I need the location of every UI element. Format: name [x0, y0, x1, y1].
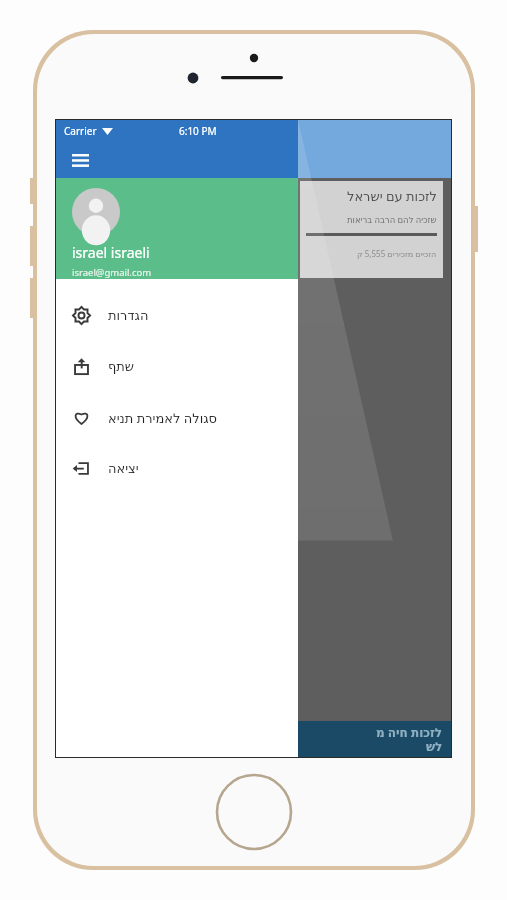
- button[interactable]: יציאה: [56, 443, 298, 494]
- staticText: לזכות עם ישראל: [347, 187, 437, 205]
- staticText: israel israeli: [72, 243, 150, 262]
- staticText: 6:10 PM: [179, 124, 217, 138]
- button[interactable]: הגדרות: [56, 290, 298, 341]
- button[interactable]: Open navigation menu: [65, 145, 95, 175]
- staticText: סגולה לאמירת תניא: [108, 409, 218, 427]
- button[interactable]: israel israeli: [56, 178, 298, 279]
- staticText: הגדרות: [108, 308, 149, 323]
- staticText: לש: [426, 740, 443, 754]
- staticText: שזכיה להם הרבה בריאות: [347, 214, 437, 226]
- button[interactable]: סגולה לאמירת תניא: [56, 392, 298, 443]
- staticText: Carrier: [64, 124, 97, 138]
- staticText: לזכות חיה מ: [376, 724, 443, 740]
- button[interactable]: שתף: [56, 341, 298, 392]
- staticText: שתף: [108, 359, 135, 374]
- staticText: יציאה: [108, 461, 139, 476]
- staticText: israel@gmail.com: [72, 266, 152, 279]
- staticText: הזכיים מזכירים 5,555 ק: [357, 248, 437, 259]
